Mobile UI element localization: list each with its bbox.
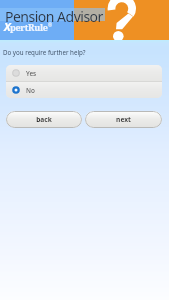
button[interactable]: Yes <box>6 65 162 81</box>
staticText: pertRule <box>10 21 48 33</box>
button[interactable]: No <box>6 82 162 98</box>
staticText: ® <box>48 22 53 29</box>
staticText: next <box>116 115 131 124</box>
staticText: No <box>26 86 35 95</box>
staticText: X <box>4 19 11 34</box>
staticText: Yes <box>26 69 37 78</box>
staticText: Do you require further help? <box>3 48 86 56</box>
staticText: Pension Advisor <box>5 7 103 26</box>
button[interactable]: back <box>6 111 82 128</box>
button[interactable]: next <box>85 111 162 128</box>
staticText: back <box>36 115 52 124</box>
